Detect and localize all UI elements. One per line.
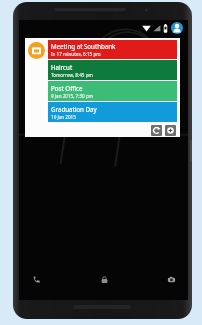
staticText: 10 Jan 2015 — [51, 114, 76, 120]
button[interactable]: Post Office — [48, 81, 177, 101]
staticText: Post Office — [51, 84, 83, 92]
button[interactable]: Add event — [165, 125, 176, 136]
button[interactable]: Graduation Day — [48, 102, 177, 122]
staticText: In 17 minutes, 6:15 pm — [51, 51, 101, 57]
button[interactable]: Unlock — [97, 272, 111, 286]
button[interactable]: Calendar — [28, 42, 45, 59]
staticText: Tomorrow, 8:45 pm — [51, 72, 93, 78]
button[interactable]: Phone — [29, 272, 43, 286]
staticText: Graduation Day — [51, 105, 97, 113]
button[interactable]: Haircut — [48, 60, 177, 80]
button[interactable]: Refresh — [151, 125, 162, 136]
button[interactable]: User profile — [171, 22, 183, 34]
button[interactable]: Meeting at Southbank — [48, 40, 177, 59]
staticText: Haircut — [51, 63, 73, 71]
button[interactable]: Camera — [164, 272, 178, 286]
button[interactable]: Calendar — [25, 38, 180, 137]
staticText: Meeting at Southbank — [51, 42, 116, 50]
staticText: 9 Jan 2015, 7:30 pm — [51, 93, 94, 99]
